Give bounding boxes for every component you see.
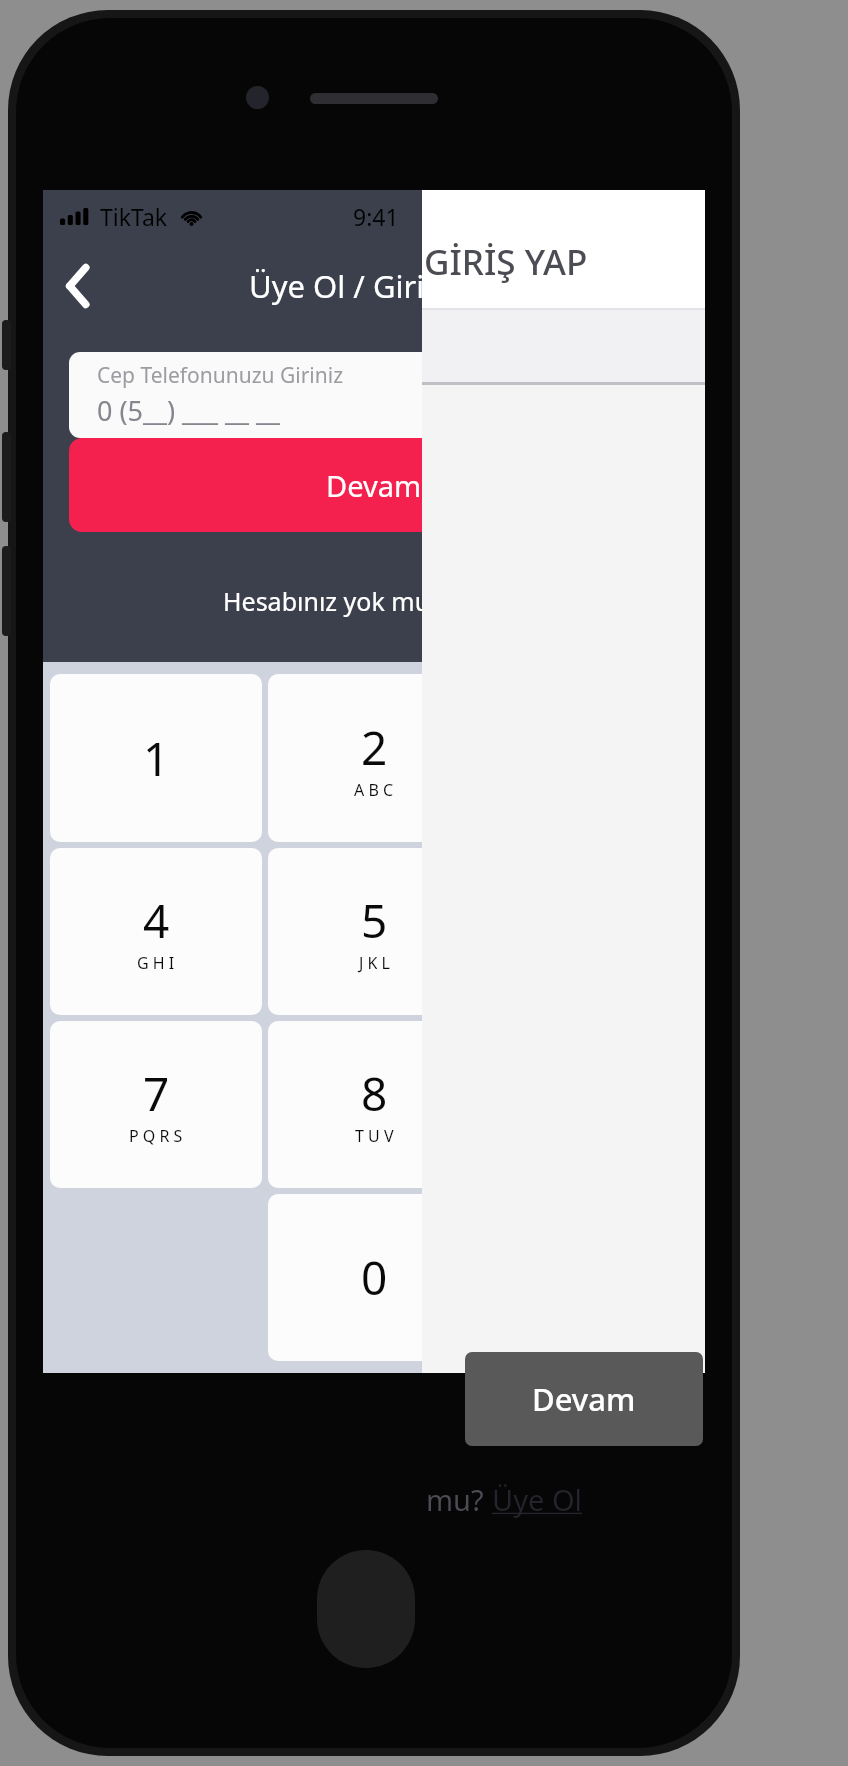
- staticText: G H I: [137, 952, 175, 974]
- button[interactable]: 4: [50, 848, 262, 1015]
- button[interactable]: Devam: [69, 438, 679, 532]
- staticText: 2: [361, 716, 388, 779]
- staticText: TikTak: [100, 201, 168, 232]
- staticText: GİRİŞ YAP: [424, 238, 588, 286]
- button[interactable]: 7: [50, 1021, 262, 1188]
- staticText: Devam: [326, 466, 422, 505]
- button[interactable]: 8: [268, 1021, 480, 1188]
- button[interactable]: Hesabınız yok mu? Üye Ol: [223, 584, 526, 618]
- staticText: A B C: [354, 779, 394, 801]
- staticText: P Q R S: [129, 1125, 183, 1147]
- staticText: 8: [361, 1062, 388, 1125]
- staticText: J K L: [359, 952, 390, 974]
- staticText: 9:41: [353, 201, 399, 232]
- button[interactable]: Devam: [465, 1352, 703, 1446]
- button[interactable]: Cep Telefonunuzu Giriniz: [69, 352, 679, 438]
- button[interactable]: 0: [268, 1194, 480, 1361]
- staticText: 0: [361, 1246, 388, 1309]
- button[interactable]: mu?: [426, 1480, 583, 1519]
- staticText: Üye Ol: [492, 1480, 583, 1519]
- staticText: 5: [361, 889, 388, 952]
- staticText: 7: [143, 1062, 170, 1125]
- button[interactable]: Back: [49, 257, 107, 315]
- button[interactable]: 5: [268, 848, 480, 1015]
- button[interactable]: 1: [50, 674, 262, 842]
- staticText: 4: [143, 889, 170, 952]
- staticText: 0 (5__) ___ __ __: [97, 392, 281, 429]
- staticText: Üye Ol / Giriş Yap: [249, 265, 500, 307]
- button[interactable]: 2: [268, 674, 480, 842]
- staticText: T U V: [355, 1125, 394, 1147]
- staticText: mu?: [426, 1480, 492, 1519]
- staticText: Cep Telefonunuzu Giriniz: [97, 361, 344, 390]
- staticText: Devam: [532, 1378, 636, 1420]
- staticText: 1: [143, 727, 170, 790]
